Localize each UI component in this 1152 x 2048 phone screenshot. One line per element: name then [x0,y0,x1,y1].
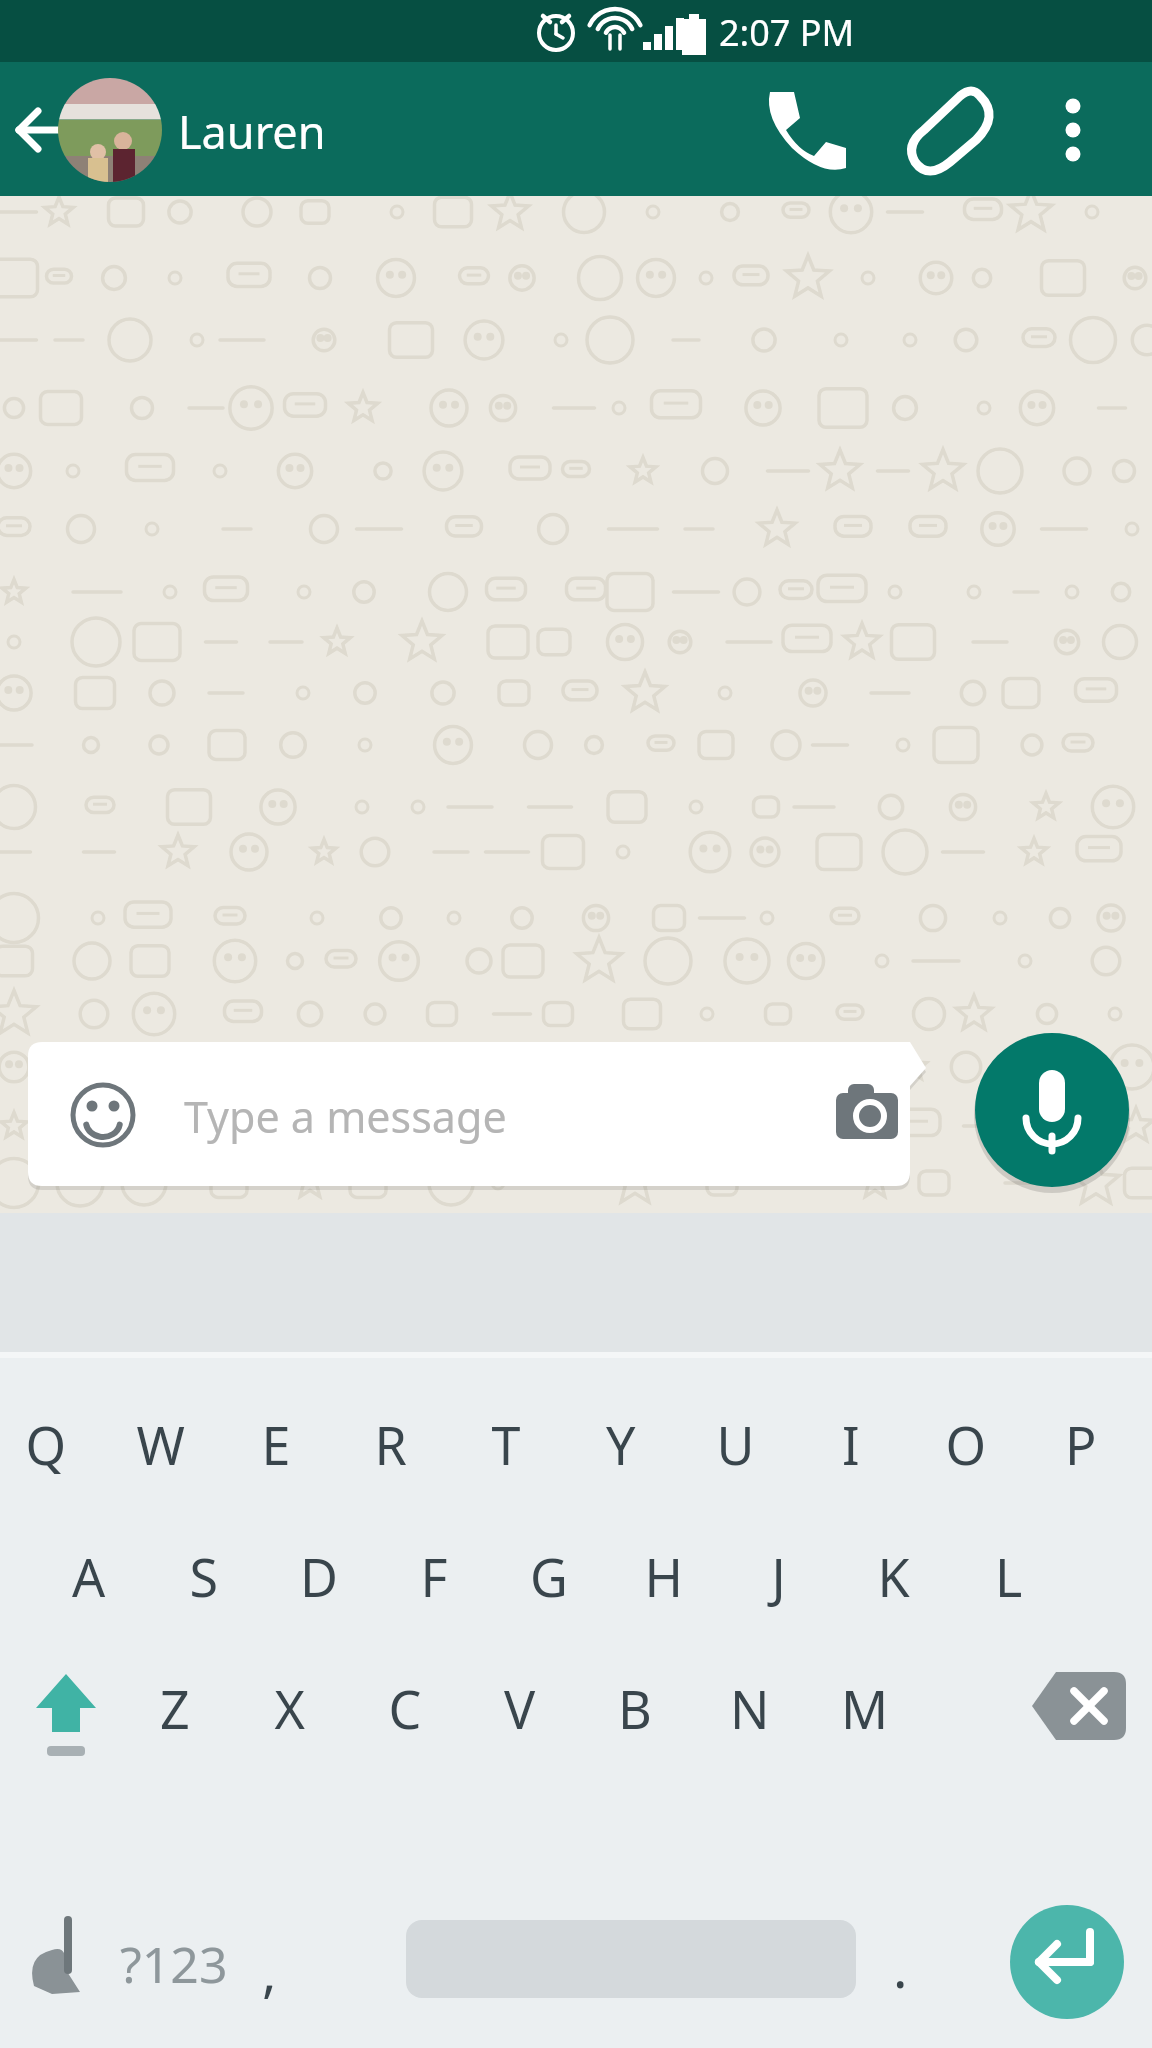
button[interactable]: Shift [6,1642,126,1774]
button[interactable] [26,1040,922,1188]
button[interactable] [693,1642,808,1774]
button[interactable]: More options [1024,78,1124,178]
button[interactable] [60,1510,175,1642]
button[interactable]: Voice call [752,78,852,178]
button[interactable]: Voice input [6,1898,124,2028]
button[interactable]: Profile photo [56,76,166,186]
button[interactable] [878,1898,962,2028]
button[interactable] [2,1378,117,1510]
button[interactable]: Backspace [1020,1642,1142,1774]
button[interactable] [290,1510,405,1642]
button[interactable] [118,1642,233,1774]
button[interactable]: Camera [818,1068,916,1166]
button[interactable] [176,86,416,174]
button[interactable] [807,1378,922,1510]
button[interactable] [1037,1378,1152,1510]
button[interactable] [347,1378,462,1510]
button[interactable] [463,1642,578,1774]
button[interactable] [462,1378,577,1510]
button[interactable] [520,1510,635,1642]
button[interactable] [398,1918,862,2010]
button[interactable]: Record voice message [974,1032,1132,1190]
button[interactable] [117,1378,232,1510]
button[interactable] [175,1510,290,1642]
button[interactable] [692,1378,807,1510]
button[interactable] [256,1898,340,2028]
button[interactable] [233,1642,348,1774]
button[interactable] [405,1510,520,1642]
button[interactable] [124,1898,256,2028]
button[interactable] [980,1510,1095,1642]
button[interactable] [635,1510,750,1642]
button[interactable] [232,1378,347,1510]
button[interactable] [577,1378,692,1510]
button[interactable]: Enter [1004,1902,1130,2028]
button[interactable] [348,1642,463,1774]
button[interactable] [922,1378,1037,1510]
button[interactable] [750,1510,865,1642]
button[interactable] [578,1642,693,1774]
button[interactable]: Attach [906,78,1006,178]
button[interactable]: Emoji [56,1070,150,1164]
button[interactable]: Back [10,84,106,180]
button[interactable] [865,1510,980,1642]
button[interactable] [808,1642,923,1774]
